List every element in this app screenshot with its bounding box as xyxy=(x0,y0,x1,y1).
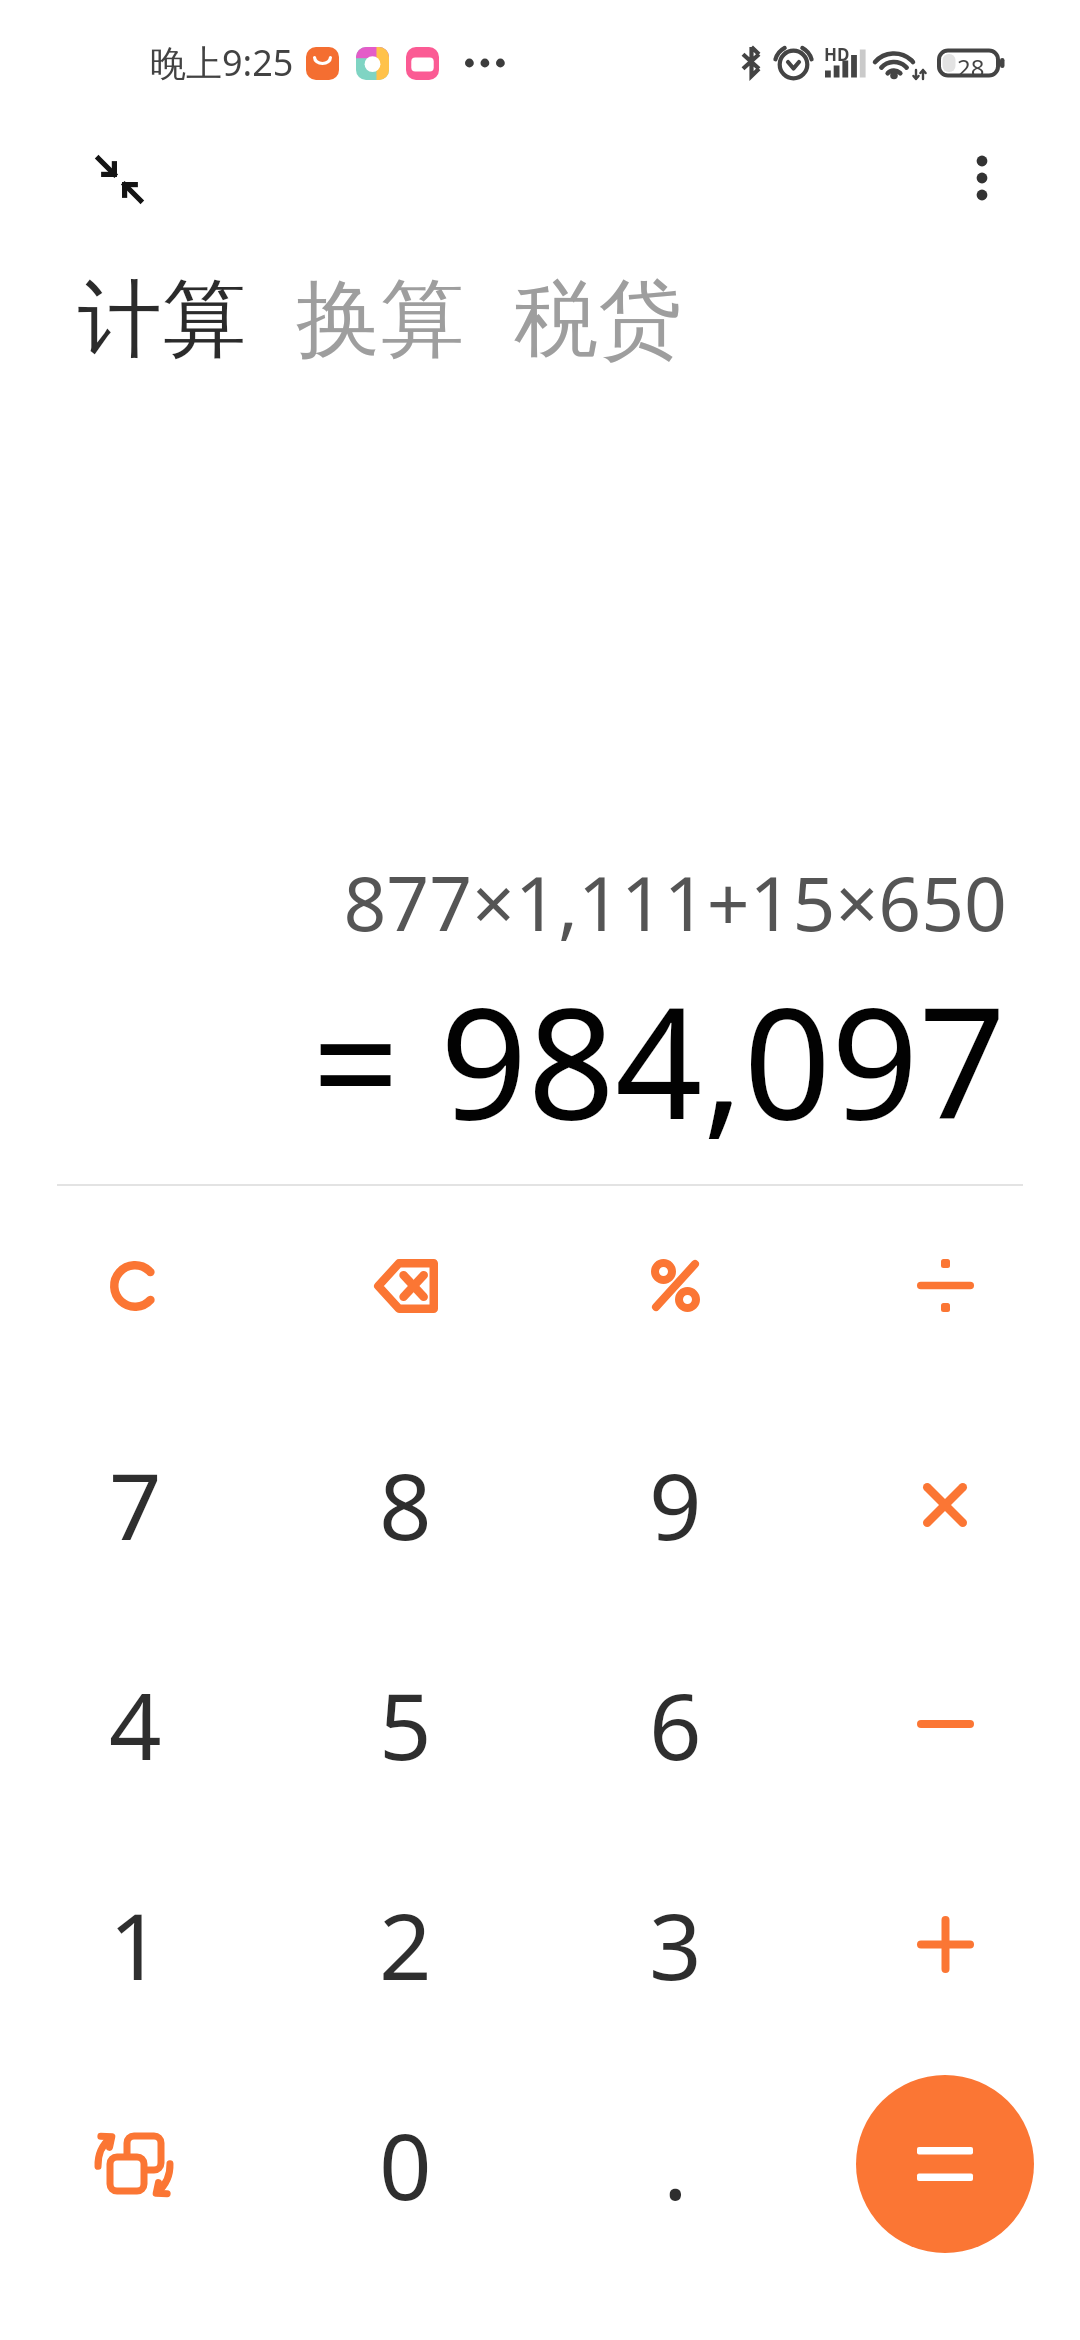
button[interactable]: 9 xyxy=(540,1395,810,1614)
staticText: 1 xyxy=(109,1882,162,2007)
button[interactable]: Backspace xyxy=(270,1176,540,1395)
button[interactable]: Clear xyxy=(0,1176,270,1395)
staticText: 8 xyxy=(379,1442,432,1567)
staticText: 9 xyxy=(649,1442,702,1567)
button[interactable]: 3 xyxy=(540,1834,810,2054)
staticText: HD xyxy=(824,43,850,66)
staticText: 5 xyxy=(379,1662,432,1787)
button[interactable]: 8 xyxy=(270,1395,540,1614)
button[interactable]: 2 xyxy=(270,1834,540,2054)
button[interactable]: 5 xyxy=(270,1614,540,1834)
staticText: 3 xyxy=(649,1882,702,2007)
staticText: 4 xyxy=(109,1662,162,1787)
button[interactable]: Minus xyxy=(810,1614,1080,1834)
staticText: 6 xyxy=(649,1662,702,1787)
staticText: 税贷 xyxy=(514,267,682,373)
button[interactable]: Collapse xyxy=(87,147,151,211)
staticText: = xyxy=(312,955,400,1163)
button[interactable]: 7 xyxy=(0,1395,270,1614)
button[interactable]: Percent xyxy=(540,1176,810,1395)
button[interactable]: 税贷 xyxy=(514,267,682,373)
button[interactable]: 换算 xyxy=(296,267,464,373)
button[interactable]: Equals xyxy=(856,2075,1034,2253)
button[interactable]: Multiply xyxy=(810,1395,1080,1614)
button[interactable]: Divide xyxy=(810,1176,1080,1395)
button[interactable]: 1 xyxy=(0,1834,270,2054)
staticText: 2 xyxy=(379,1882,432,2007)
button[interactable]: Plus xyxy=(810,1834,1080,2054)
staticText: 计算 xyxy=(78,267,246,373)
staticText: 换算 xyxy=(296,267,464,373)
button[interactable]: Convert xyxy=(0,2054,270,2274)
button[interactable]: More options xyxy=(951,147,1013,209)
button[interactable]: . xyxy=(540,2054,810,2274)
button[interactable]: 0 xyxy=(270,2054,540,2274)
staticText: 0 xyxy=(379,2102,432,2227)
button[interactable]: 6 xyxy=(540,1614,810,1834)
staticText: . xyxy=(663,2102,688,2227)
button[interactable]: 计算 xyxy=(78,267,246,373)
staticText: 877×1,111+15×650 xyxy=(343,851,1007,953)
staticText: 晚上9:25 xyxy=(150,38,294,87)
staticText: 984,097 xyxy=(440,955,1007,1163)
staticText: 28 xyxy=(957,51,985,84)
button[interactable]: 4 xyxy=(0,1614,270,1834)
staticText: 7 xyxy=(109,1442,162,1567)
